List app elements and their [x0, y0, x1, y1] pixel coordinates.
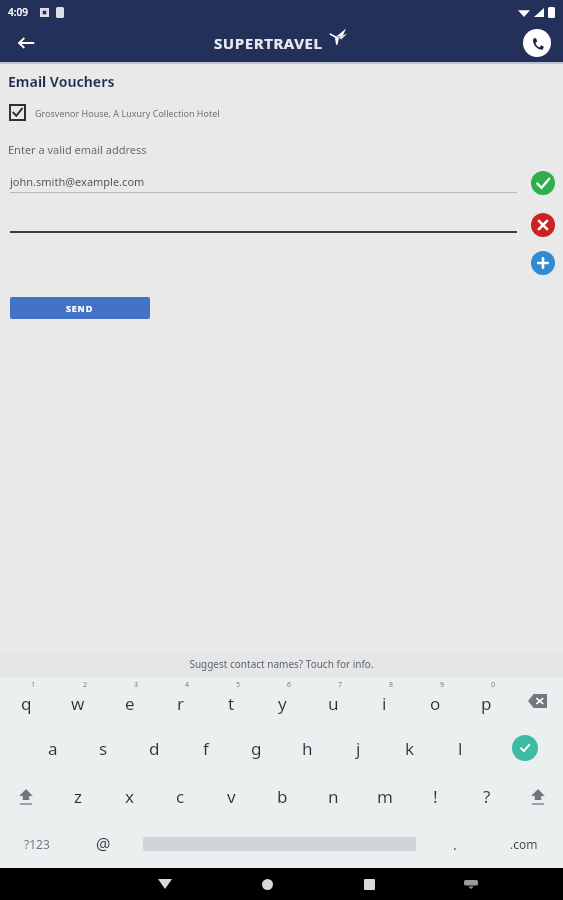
staticText: t: [228, 692, 235, 715]
staticText: Grosvenor House, A Luxury Collection Hot…: [35, 107, 220, 119]
staticText: u: [328, 692, 339, 715]
button[interactable]: Valid email: [531, 171, 555, 195]
button[interactable]: Suggest contact names? Touch for info.: [0, 651, 563, 677]
staticText: 1: [31, 680, 36, 690]
button[interactable]: 1: [0, 677, 52, 724]
staticText: z: [74, 785, 82, 808]
staticText: 3: [134, 680, 139, 690]
button[interactable]: Space: [134, 820, 424, 868]
staticText: y: [278, 692, 287, 715]
button[interactable]: 4: [155, 677, 206, 724]
staticText: w: [71, 692, 85, 715]
staticText: 8: [389, 680, 394, 690]
button[interactable]: s: [78, 724, 129, 772]
staticText: !: [433, 785, 438, 808]
button[interactable]: n: [308, 772, 359, 820]
button[interactable]: a: [27, 724, 78, 772]
button[interactable]: ?123: [0, 820, 73, 868]
staticText: m: [377, 785, 393, 808]
button[interactable]: 8: [359, 677, 410, 724]
staticText: q: [21, 692, 32, 715]
staticText: 2: [83, 680, 88, 690]
staticText: Suggest contact names? Touch for info.: [189, 657, 374, 671]
staticText: e: [125, 692, 135, 715]
button[interactable]: d: [129, 724, 180, 772]
staticText: b: [277, 785, 288, 808]
button[interactable]: 2: [52, 677, 104, 724]
staticText: SEND: [66, 302, 94, 314]
staticText: v: [227, 785, 236, 808]
button[interactable]: 7: [308, 677, 359, 724]
button[interactable]: f: [180, 724, 231, 772]
staticText: d: [149, 737, 160, 760]
button[interactable]: Shift: [512, 772, 563, 820]
button[interactable]: x: [104, 772, 155, 820]
button[interactable]: b: [257, 772, 308, 820]
button[interactable]: .com: [485, 820, 563, 868]
staticText: SUPERTRAVEL: [214, 33, 323, 53]
button[interactable]: Call: [523, 29, 551, 57]
staticText: john.smith@example.com: [10, 174, 145, 189]
staticText: 7: [338, 680, 343, 690]
button[interactable]: ?: [461, 772, 512, 820]
button[interactable]: z: [52, 772, 104, 820]
button[interactable]: Add email: [531, 251, 555, 275]
button[interactable]: @: [73, 820, 134, 868]
button[interactable]: !: [410, 772, 461, 820]
button[interactable]: Remove email: [531, 213, 555, 237]
button[interactable]: j: [333, 724, 384, 772]
button[interactable]: h: [282, 724, 333, 772]
button[interactable]: .: [424, 820, 485, 868]
button[interactable]: Grosvenor House, A Luxury Collection Hot…: [10, 105, 563, 120]
staticText: x: [125, 785, 134, 808]
staticText: .com: [510, 836, 538, 852]
button[interactable]: 6: [257, 677, 308, 724]
staticText: s: [99, 737, 108, 760]
button[interactable]: Backspace: [512, 677, 563, 724]
staticText: l: [458, 737, 463, 760]
staticText: .: [453, 835, 457, 854]
staticText: Email Vouchers: [8, 72, 115, 91]
staticText: 4:09: [8, 5, 28, 19]
staticText: j: [356, 737, 361, 760]
staticText: c: [176, 785, 185, 808]
button[interactable]: v: [206, 772, 257, 820]
button[interactable]: m: [359, 772, 410, 820]
button[interactable]: Back: [114, 868, 216, 900]
staticText: a: [48, 737, 58, 760]
staticText: ?: [483, 785, 491, 808]
staticText: r: [177, 692, 185, 715]
button[interactable]: Recent apps: [318, 868, 420, 900]
staticText: 4: [185, 680, 190, 690]
staticText: f: [203, 737, 209, 760]
button[interactable]: SEND: [10, 297, 150, 319]
staticText: n: [328, 785, 339, 808]
staticText: k: [405, 737, 415, 760]
staticText: @: [96, 833, 111, 855]
staticText: 5: [236, 680, 241, 690]
staticText: 0: [491, 680, 496, 690]
button[interactable]: 0: [461, 677, 512, 724]
staticText: 9: [440, 680, 445, 690]
button[interactable]: c: [155, 772, 206, 820]
button[interactable]: Home: [216, 868, 318, 900]
button[interactable]: Shift: [0, 772, 52, 820]
staticText: i: [382, 692, 387, 715]
staticText: 6: [287, 680, 292, 690]
staticText: h: [302, 737, 313, 760]
staticText: o: [430, 692, 441, 715]
button[interactable]: 5: [206, 677, 257, 724]
staticText: g: [251, 737, 262, 760]
button[interactable]: Enter: [486, 724, 563, 772]
button[interactable]: 9: [410, 677, 461, 724]
button[interactable]: l: [435, 724, 486, 772]
button[interactable]: 3: [104, 677, 155, 724]
staticText: Enter a valid email address: [8, 142, 147, 157]
button[interactable]: g: [231, 724, 282, 772]
staticText: ?123: [24, 836, 50, 852]
button[interactable]: Back: [10, 27, 42, 59]
staticText: p: [481, 692, 492, 715]
button[interactable]: k: [384, 724, 435, 772]
button[interactable]: Hide keyboard: [420, 868, 522, 900]
